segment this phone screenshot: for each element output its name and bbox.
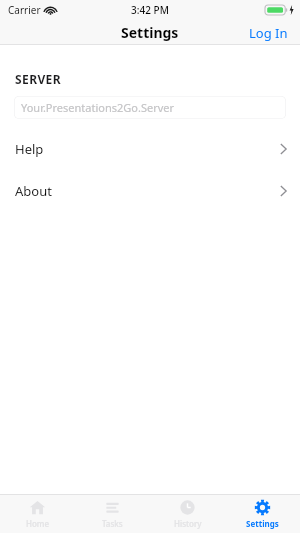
staticText: Carrier — [8, 3, 41, 17]
staticText: 3:42 PM — [131, 3, 169, 17]
button[interactable]: History — [150, 495, 225, 533]
staticText: SERVER — [15, 71, 61, 87]
button[interactable]: Log In — [237, 20, 300, 45]
button[interactable]: Help — [0, 128, 300, 170]
staticText: Home — [26, 518, 50, 529]
staticText: Tasks — [102, 518, 123, 529]
staticText: About — [15, 182, 52, 200]
staticText: Help — [15, 140, 44, 158]
staticText: Settings — [121, 23, 179, 42]
button[interactable]: Settings — [225, 495, 300, 533]
staticText: Your.Presentations2Go.Server — [21, 100, 175, 115]
staticText: History — [174, 518, 202, 529]
button[interactable]: Home — [0, 495, 75, 533]
button[interactable]: About — [0, 170, 300, 212]
button[interactable]: Tasks — [75, 495, 150, 533]
button[interactable]: Your.Presentations2Go.Server — [14, 96, 286, 119]
staticText: Settings — [246, 518, 279, 529]
staticText: Log In — [249, 24, 288, 42]
